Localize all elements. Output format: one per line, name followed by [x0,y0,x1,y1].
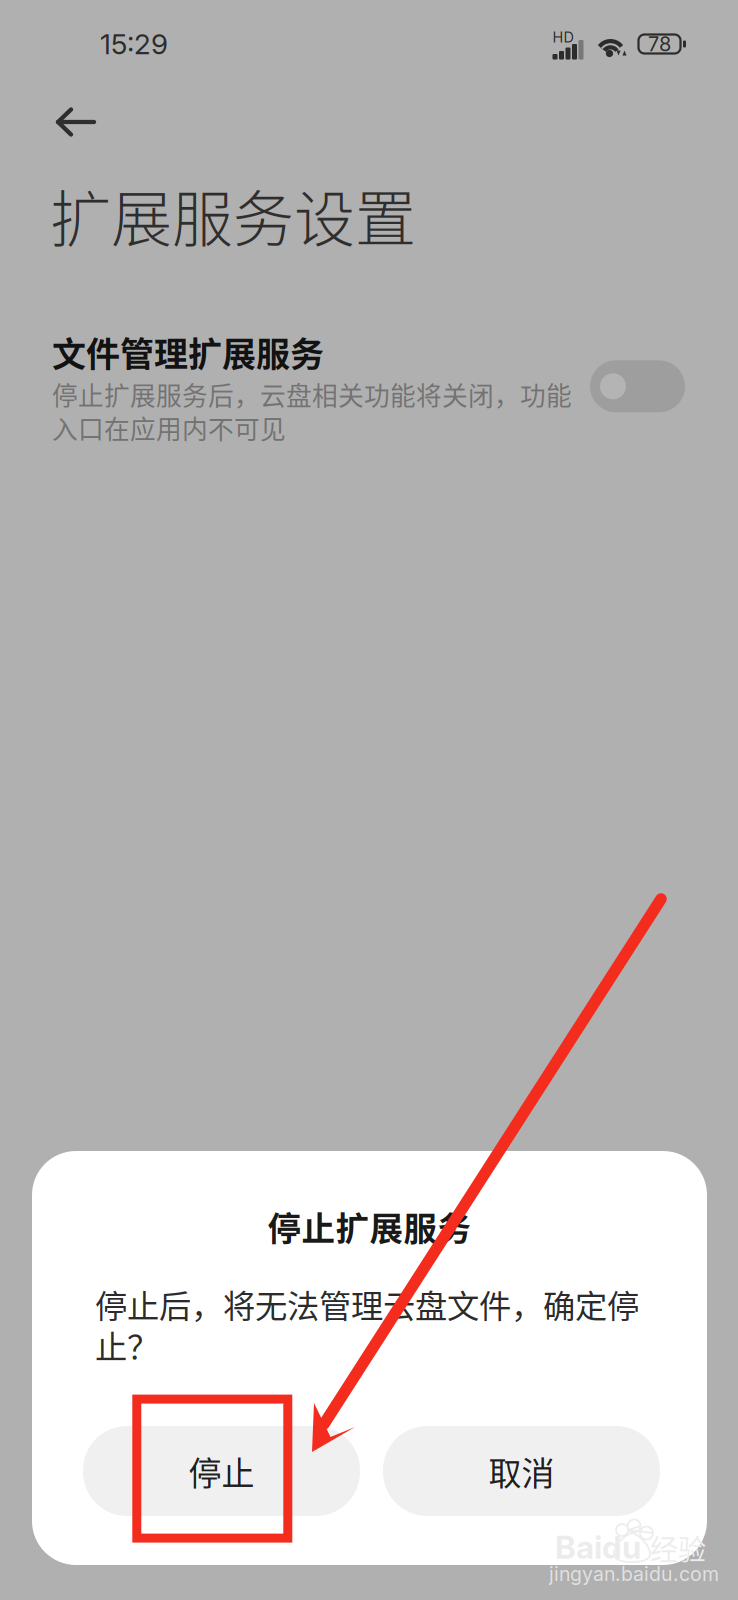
staticText: 15:29 [100,27,168,61]
button[interactable]: 取消 [383,1426,660,1516]
staticText: 文件管理扩展服务 [52,327,324,376]
staticText: jingyan.baidu.com [549,1562,719,1586]
staticText: 经验 [650,1528,706,1568]
staticText: 取消 [488,1447,554,1495]
staticText: 停止 [188,1447,254,1495]
staticText: 停止扩展服务 [267,1202,471,1250]
staticText: Baidu [555,1528,641,1566]
staticText: 停止后，将无法管理云盘文件，确定停止？ [95,1283,639,1365]
staticText: 停止扩展服务后，云盘相关功能将关闭，功能入口在应用内不可见 [52,378,572,445]
button[interactable]: 停止 [83,1426,360,1516]
staticText: 扩展服务设置 [50,171,416,259]
staticText: HD [552,28,573,46]
button[interactable]: Back [28,86,124,158]
button[interactable]: Toggle file management extension service [590,360,685,412]
staticText: 78 [648,32,671,56]
